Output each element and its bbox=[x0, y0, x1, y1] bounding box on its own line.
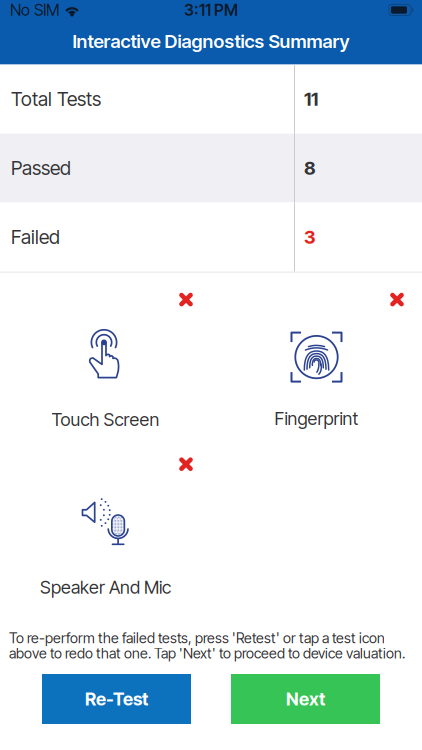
staticText: To re-perform the failed tests, press 'R… bbox=[9, 629, 385, 647]
staticText: 3 bbox=[304, 226, 316, 248]
button[interactable]: Touch Screen bbox=[0, 293, 211, 461]
staticText: 8 bbox=[304, 157, 316, 179]
staticText: Passed bbox=[11, 156, 71, 180]
staticText: Interactive Diagnostics Summary bbox=[72, 30, 349, 53]
button[interactable]: Fingerprint bbox=[211, 293, 422, 461]
button[interactable]: Re-Test bbox=[42, 674, 191, 724]
staticText: 3:11 PM bbox=[184, 0, 238, 20]
staticText: 11 bbox=[304, 88, 318, 110]
staticText: Touch Screen bbox=[51, 409, 159, 430]
staticText: Total Tests bbox=[11, 87, 101, 111]
staticText: above to redo that one. Tap 'Next' to pr… bbox=[9, 645, 405, 662]
staticText: Fingerprint bbox=[274, 408, 358, 429]
staticText: Speaker And Mic bbox=[40, 576, 171, 598]
staticText: No SIM bbox=[10, 0, 60, 20]
button[interactable]: Next bbox=[231, 674, 380, 724]
button[interactable]: Speaker And Mic bbox=[0, 461, 211, 603]
staticText: Next bbox=[286, 688, 325, 710]
staticText: Re-Test bbox=[85, 688, 148, 710]
staticText: Failed bbox=[11, 225, 60, 249]
